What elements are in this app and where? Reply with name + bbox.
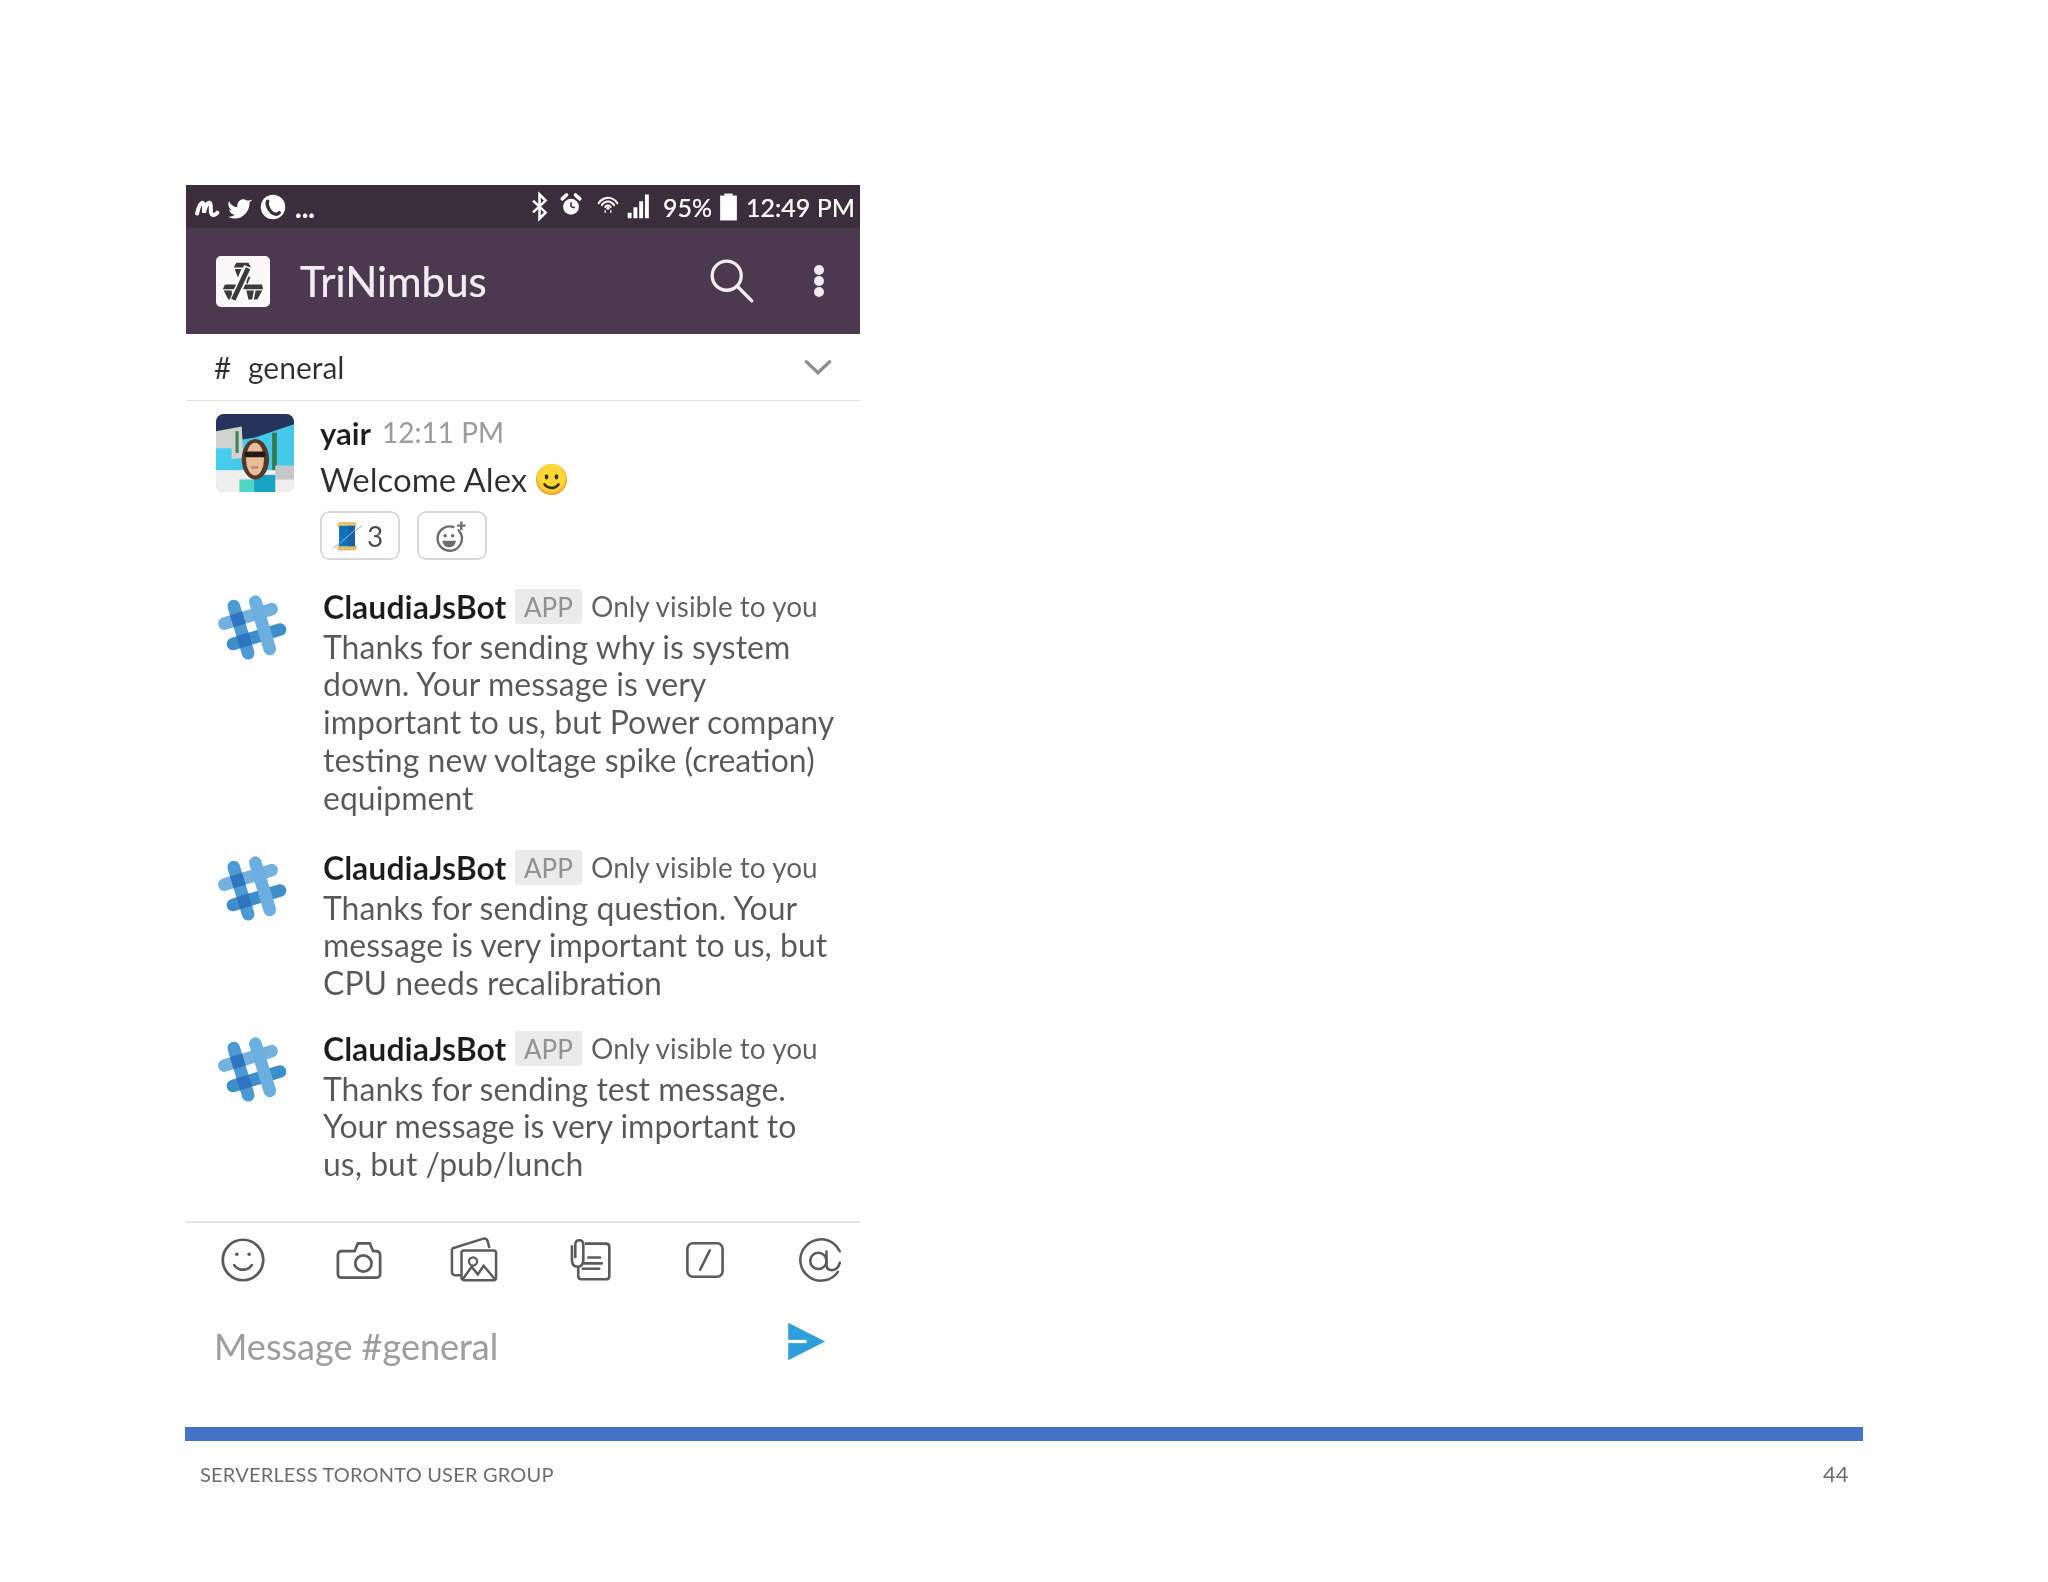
staticText: Message #general <box>214 1324 499 1367</box>
button[interactable]: Slash command <box>674 1229 736 1291</box>
button[interactable]: Photos <box>443 1229 505 1291</box>
staticText: 12:49 PM <box>746 192 855 222</box>
staticText: general <box>248 349 345 385</box>
staticText: ... <box>295 190 315 224</box>
staticText: APP <box>524 1033 573 1064</box>
staticText: Only visible to you <box>591 850 818 884</box>
staticText: APP <box>524 591 573 622</box>
staticText: APP <box>524 852 573 883</box>
staticText: TriNimbus <box>300 256 487 306</box>
staticText: # <box>214 349 232 385</box>
staticText: Thanks for sending test message. Your me… <box>323 1069 797 1183</box>
button[interactable]: Add reaction <box>417 511 487 560</box>
button[interactable]: yair <box>186 414 860 560</box>
button[interactable]: ClaudiaJsBot <box>186 1029 860 1183</box>
staticText: yair <box>320 414 372 451</box>
staticText: 12:11 PM <box>382 415 504 449</box>
button[interactable]: More options <box>792 254 846 308</box>
button[interactable]: Attach file <box>559 1229 621 1291</box>
staticText: ClaudiaJsBot <box>323 848 507 886</box>
button[interactable]: Thread reaction, 3 <box>320 511 400 560</box>
button[interactable]: ClaudiaJsBot <box>186 848 860 1002</box>
button[interactable]: Emoji <box>212 1229 274 1291</box>
button[interactable]: Camera <box>328 1229 390 1291</box>
staticText: ClaudiaJsBot <box>323 1029 507 1067</box>
button[interactable]: # <box>186 334 860 400</box>
button[interactable]: Mention <box>790 1229 852 1291</box>
staticText: 95% <box>663 192 713 222</box>
button[interactable]: Send <box>778 1313 834 1369</box>
staticText: Thanks for sending why is system down. Y… <box>323 627 835 817</box>
button[interactable]: TriNimbus workspace <box>216 256 270 307</box>
staticText: Only visible to you <box>591 1031 818 1065</box>
staticText: Thanks for sending question. Your messag… <box>323 888 828 1002</box>
staticText: 3 <box>367 519 384 553</box>
staticText: 44 <box>1823 1460 1849 1486</box>
staticText: Welcome Alex <box>320 459 536 499</box>
staticText: Only visible to you <box>591 589 818 623</box>
button[interactable]: Search <box>698 247 766 315</box>
staticText: ClaudiaJsBot <box>323 587 507 625</box>
staticText: SERVERLESS TORONTO USER GROUP <box>200 1462 554 1486</box>
button[interactable]: ClaudiaJsBot <box>186 587 860 817</box>
